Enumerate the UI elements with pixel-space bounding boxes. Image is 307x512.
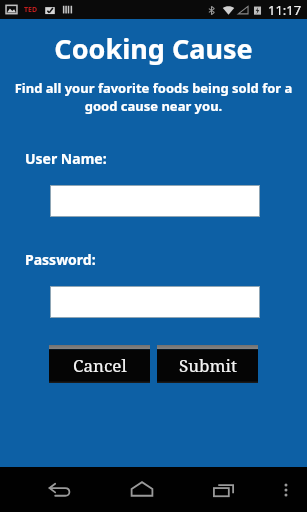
button[interactable]: Cancel [49,345,150,383]
staticText: 11:17 [268,1,302,19]
button[interactable]: Back [18,467,101,512]
staticText: TED [24,5,38,15]
button[interactable]: More options [265,467,307,512]
staticText: Find all your favorite foods being sold … [12,79,295,115]
staticText: Password: [25,250,96,269]
button[interactable]: Home [101,467,183,512]
staticText: Cancel [73,354,127,377]
button[interactable]: Submit [157,345,258,383]
staticText: Cooking Cause [0,30,307,67]
staticText: User Name: [25,149,107,168]
staticText: Submit [179,354,237,377]
button[interactable]: Recent apps [183,467,265,512]
